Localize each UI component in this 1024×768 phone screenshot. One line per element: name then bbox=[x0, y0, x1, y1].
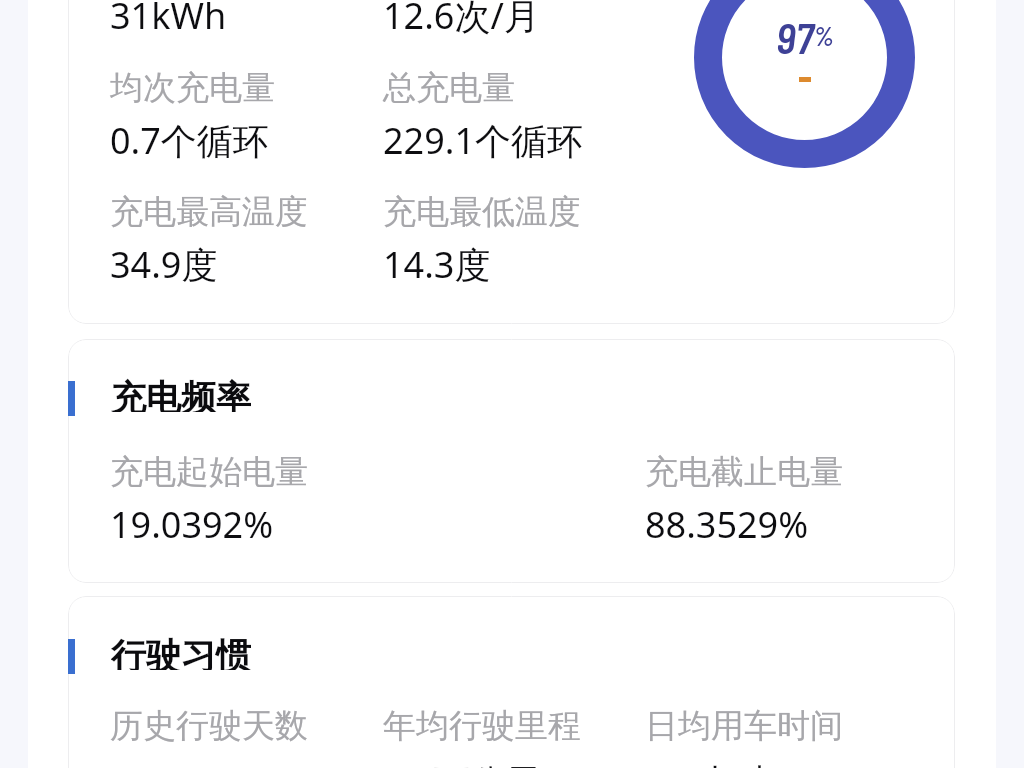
staticText: 14.3度 bbox=[383, 240, 491, 289]
staticText: 1.4小时 bbox=[645, 757, 768, 768]
button[interactable] bbox=[68, 339, 955, 583]
staticText: 日均用车时间 bbox=[645, 705, 843, 747]
staticText: 34.9度 bbox=[110, 240, 218, 289]
staticText: 0.7个循环 bbox=[110, 116, 269, 165]
staticText: 12.6次/月 bbox=[383, 0, 540, 40]
button[interactable]: 充电最高温度 bbox=[100, 182, 350, 282]
button[interactable]: 充电起始电量 bbox=[100, 442, 350, 542]
staticText: 充电最高温度 bbox=[110, 191, 308, 233]
button[interactable] bbox=[68, 0, 955, 324]
button[interactable]: Battery state of health 97 percent bbox=[694, 0, 915, 168]
staticText: 19.0392% bbox=[110, 500, 274, 549]
staticText: 充电起始电量 bbox=[110, 451, 308, 493]
staticText: 年均行驶里程 bbox=[383, 705, 581, 747]
staticText: 229.1个循环 bbox=[383, 116, 584, 165]
staticText: 充电截止电量 bbox=[645, 451, 843, 493]
staticText: 历史行驶天数 bbox=[110, 705, 308, 747]
staticText: 行驶习惯 bbox=[111, 634, 251, 670]
staticText: 88.3529% bbox=[645, 500, 809, 549]
button[interactable]: 总充电量 bbox=[373, 58, 623, 158]
staticText: 充电频率 bbox=[111, 376, 251, 412]
button[interactable] bbox=[68, 596, 955, 768]
button[interactable]: 行驶习惯 bbox=[68, 638, 251, 674]
staticText: 31kWh bbox=[110, 0, 227, 40]
button[interactable]: 充电频率 bbox=[68, 380, 251, 416]
staticText: 均次充电量 bbox=[110, 67, 275, 109]
button[interactable]: 充电最低温度 bbox=[373, 182, 623, 282]
button[interactable]: 充电截止电量 bbox=[635, 442, 885, 542]
staticText: 97% bbox=[776, 12, 834, 62]
staticText: 充电最低温度 bbox=[383, 191, 581, 233]
staticText: 3.6万公里 bbox=[383, 757, 542, 768]
button[interactable]: 均次充电量 bbox=[100, 58, 350, 158]
staticText: 总充电量 bbox=[383, 67, 515, 109]
